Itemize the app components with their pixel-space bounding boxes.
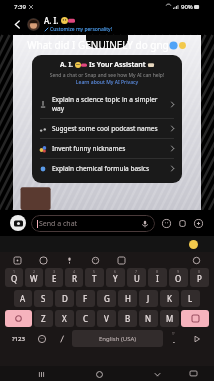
button[interactable]: ?123 bbox=[5, 330, 31, 347]
staticText: 4 bbox=[73, 269, 76, 274]
staticText: T bbox=[92, 273, 97, 284]
button[interactable]: Backspace bbox=[181, 310, 209, 327]
staticText: Z bbox=[41, 313, 46, 324]
staticText: A. I. bbox=[60, 60, 73, 70]
button[interactable]: 1 bbox=[5, 268, 23, 287]
staticText: C bbox=[83, 313, 89, 324]
button[interactable]: Voice input bbox=[64, 255, 75, 266]
button[interactable]: D bbox=[55, 290, 74, 307]
button[interactable]: B bbox=[118, 310, 137, 327]
button[interactable]: G bbox=[97, 290, 116, 307]
button[interactable]: 4 bbox=[65, 268, 83, 287]
button[interactable]: F bbox=[76, 290, 95, 307]
staticText: J bbox=[147, 293, 150, 304]
button[interactable]: 3 bbox=[45, 268, 63, 287]
staticText: F bbox=[83, 293, 88, 304]
button[interactable]: Settings bbox=[191, 255, 202, 266]
other: Voice message bbox=[141, 220, 149, 228]
staticText: 7:39 bbox=[14, 3, 26, 11]
button[interactable]: Stickers bbox=[160, 217, 172, 229]
staticText: English (USA) bbox=[99, 335, 137, 343]
staticText: R bbox=[72, 273, 77, 284]
staticText: 8 bbox=[156, 269, 159, 274]
staticText: I bbox=[156, 273, 159, 284]
button[interactable]: More options bbox=[192, 217, 204, 229]
button[interactable]: S bbox=[34, 290, 53, 307]
button[interactable]: Z bbox=[34, 310, 53, 327]
button[interactable]: !? bbox=[165, 330, 182, 347]
staticText: Y bbox=[113, 273, 118, 284]
button[interactable]: V bbox=[97, 310, 116, 327]
button[interactable]: Stickers bbox=[12, 255, 23, 266]
button[interactable]: 7 bbox=[127, 268, 146, 287]
staticText: N bbox=[145, 313, 152, 324]
button[interactable]: 5 bbox=[85, 268, 104, 287]
staticText: Send a chat bbox=[39, 219, 78, 229]
staticText: Explain chemical formula basics bbox=[52, 164, 167, 173]
button[interactable]: X bbox=[55, 310, 74, 327]
staticText: G bbox=[104, 293, 110, 304]
staticText: V bbox=[104, 313, 109, 324]
button[interactable]: L bbox=[181, 290, 200, 307]
button[interactable]: GIF bbox=[38, 255, 49, 266]
button[interactable]: N bbox=[139, 310, 158, 327]
button[interactable]: 8 bbox=[148, 268, 167, 287]
button[interactable]: A bbox=[14, 290, 32, 307]
button[interactable]: Profile bbox=[27, 18, 40, 31]
button[interactable]: M bbox=[160, 310, 179, 327]
staticText: 2 bbox=[33, 269, 36, 274]
button[interactable]: 0 bbox=[190, 268, 209, 287]
button[interactable]: Explain chemical formula basics bbox=[32, 159, 182, 178]
button[interactable]: Send a chat bbox=[31, 215, 155, 232]
button[interactable]: Camera bbox=[10, 215, 26, 231]
button[interactable]: Shift bbox=[5, 310, 32, 327]
button[interactable]: Learn about My AI Privacy bbox=[32, 79, 182, 86]
button[interactable]: Emoji bbox=[33, 330, 51, 347]
staticText: Invent funny nicknames bbox=[52, 144, 167, 153]
button[interactable]: Send bbox=[184, 330, 209, 347]
button[interactable]: Back bbox=[150, 367, 164, 381]
staticText: W bbox=[30, 273, 38, 284]
button[interactable]: H bbox=[118, 290, 137, 307]
staticText: H bbox=[125, 293, 131, 304]
button[interactable]: English (USA) bbox=[72, 330, 163, 347]
staticText: 3 bbox=[53, 269, 56, 274]
staticText: 90% bbox=[181, 3, 193, 11]
button[interactable]: Explain a science topic in a simpler way bbox=[32, 90, 182, 118]
button[interactable]: C bbox=[76, 310, 95, 327]
button[interactable]: K bbox=[160, 290, 179, 307]
staticText: A. I. bbox=[44, 15, 59, 26]
staticText: What did I GENUINELY do gng bbox=[27, 38, 169, 52]
staticText: B bbox=[125, 313, 131, 324]
staticText: A bbox=[20, 293, 26, 304]
button[interactable]: Gallery bbox=[176, 217, 188, 229]
staticText: Is Your Assistant bbox=[89, 60, 146, 70]
staticText: U bbox=[134, 273, 140, 284]
staticText: ?123 bbox=[12, 335, 25, 343]
staticText: L bbox=[188, 293, 193, 304]
staticText: 5 bbox=[93, 269, 96, 274]
button[interactable]: Hide keyboard bbox=[186, 367, 200, 381]
staticText: . bbox=[173, 336, 175, 346]
button[interactable]: Invent funny nicknames bbox=[32, 139, 182, 158]
button[interactable]: Handwriting bbox=[53, 330, 70, 347]
staticText: 9 bbox=[177, 269, 180, 274]
button[interactable]: Suggest some cool podcast names bbox=[32, 119, 182, 138]
staticText: 6 bbox=[114, 269, 117, 274]
staticText: D bbox=[62, 293, 68, 304]
button[interactable]: Home bbox=[92, 367, 106, 381]
staticText: E bbox=[52, 273, 57, 284]
staticText: O bbox=[175, 273, 182, 284]
button[interactable]: Recent apps bbox=[34, 367, 48, 381]
button[interactable]: Emoji reaction bbox=[189, 240, 198, 249]
button[interactable]: J bbox=[139, 290, 158, 307]
button[interactable]: Translate bbox=[116, 255, 127, 266]
staticText: X bbox=[62, 313, 67, 324]
staticText: Suggest some cool podcast names bbox=[52, 124, 167, 133]
button[interactable]: 9 bbox=[169, 268, 188, 287]
button[interactable]: Emoji bbox=[90, 255, 101, 266]
button[interactable]: Back bbox=[10, 17, 24, 31]
button[interactable]: 2 bbox=[25, 268, 43, 287]
staticText: K bbox=[167, 293, 172, 304]
button[interactable]: 6 bbox=[106, 268, 125, 287]
